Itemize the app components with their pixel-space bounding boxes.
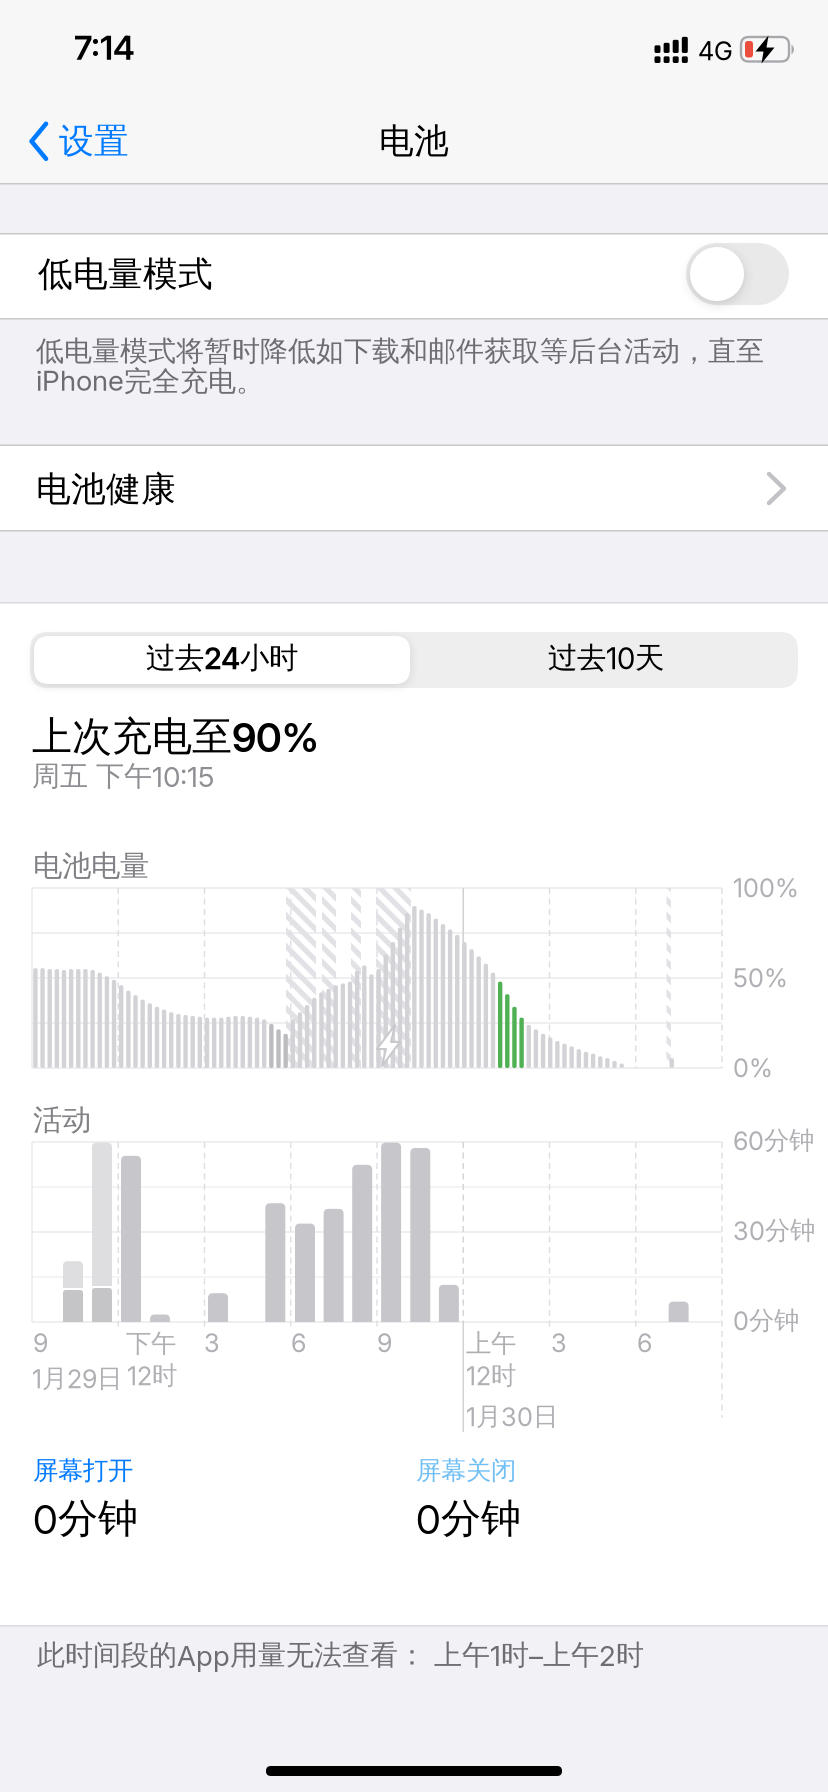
staticText: 电池 <box>379 120 449 163</box>
staticText: 电池健康 <box>36 468 176 511</box>
button[interactable]: 过去10天 <box>414 632 798 688</box>
staticText: 0分钟 <box>33 1494 138 1543</box>
staticText: 12时 <box>127 1360 177 1391</box>
staticText: 屏幕关闭 <box>416 1455 516 1486</box>
staticText: 此时间段的App用量无法查看： 上午1时–上午2时 <box>37 1638 644 1672</box>
staticText: 3 <box>204 1328 220 1358</box>
staticText: 6 <box>637 1328 652 1358</box>
staticText: 低电量模式 <box>38 253 213 296</box>
staticText: 0分钟 <box>416 1494 521 1543</box>
staticText: 9 <box>377 1328 392 1358</box>
button[interactable]: 过去24小时 <box>34 636 410 684</box>
staticText: 周五 下午10:15 <box>32 759 214 793</box>
staticText: 9 <box>33 1328 48 1358</box>
staticText: 活动 <box>33 1102 91 1138</box>
staticText: 电池电量 <box>33 848 149 884</box>
staticText: 7:14 <box>74 28 135 67</box>
staticText: 30分钟 <box>733 1215 815 1246</box>
staticText: 过去24小时 <box>146 640 298 676</box>
button[interactable]: 低电量模式 <box>686 243 789 305</box>
staticText: 50% <box>733 963 788 993</box>
staticText: 60分钟 <box>733 1125 814 1156</box>
staticText: 下午 <box>126 1328 176 1359</box>
staticText: 0分钟 <box>733 1305 799 1336</box>
staticText: 1月30日 <box>466 1401 558 1432</box>
staticText: 4G <box>698 36 733 66</box>
staticText: 100% <box>733 873 799 903</box>
staticText: 6 <box>291 1328 306 1358</box>
staticText: 3 <box>551 1328 567 1358</box>
staticText: 上次充电至90% <box>32 712 319 761</box>
staticText: 12时 <box>466 1360 516 1391</box>
staticText: iPhone完全充电。 <box>36 364 264 399</box>
staticText: 上午 <box>466 1328 516 1359</box>
staticText: 屏幕打开 <box>33 1455 133 1486</box>
staticText: 1月29日 <box>32 1363 122 1394</box>
staticText: 设置 <box>59 120 129 163</box>
button[interactable]: 电池健康 <box>0 446 828 530</box>
staticText: 0% <box>733 1053 773 1083</box>
button[interactable]: 设置 <box>29 120 129 163</box>
staticText: 过去10天 <box>548 640 664 676</box>
staticText: 低电量模式将暂时降低如下载和邮件获取等后台活动，直至 <box>36 334 764 368</box>
